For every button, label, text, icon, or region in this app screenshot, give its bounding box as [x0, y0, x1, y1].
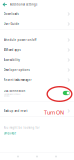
- staticText: Additional settings: [10, 3, 37, 6]
- staticText: Language: [3, 131, 16, 135]
- staticText: Turn ON: [44, 109, 64, 116]
- staticText: Back up and reset: [3, 109, 27, 113]
- staticText: Schedule power on/off: [3, 38, 36, 42]
- button[interactable]: Back: [2, 2, 7, 7]
- button[interactable]: Accessibility: [0, 55, 74, 65]
- button[interactable]: Downloads: [0, 9, 74, 19]
- button[interactable]: Schedule power on/off: [0, 35, 74, 45]
- staticText: Developer options: [3, 68, 29, 72]
- button[interactable]: OTA connection: [0, 85, 74, 101]
- staticText: Automatically turn off when sleeping: [3, 93, 20, 97]
- staticText: Accessibility: [3, 58, 19, 62]
- button[interactable]: SIM card apps: [0, 45, 74, 55]
- button[interactable]: Back up and reset: [0, 106, 74, 116]
- staticText: Recent tasks manager: [3, 78, 31, 82]
- button[interactable]: Language: [3, 131, 16, 135]
- staticText: You might be looking for: [3, 126, 39, 129]
- staticText: OTA connection: [3, 89, 25, 93]
- button[interactable]: User Guide: [0, 19, 74, 29]
- button[interactable]: Developer options: [0, 65, 74, 75]
- staticText: Downloads: [3, 12, 18, 16]
- staticText: User Guide: [3, 22, 19, 26]
- staticText: SIM card apps: [3, 48, 20, 52]
- button[interactable]: Recent tasks manager: [0, 75, 74, 85]
